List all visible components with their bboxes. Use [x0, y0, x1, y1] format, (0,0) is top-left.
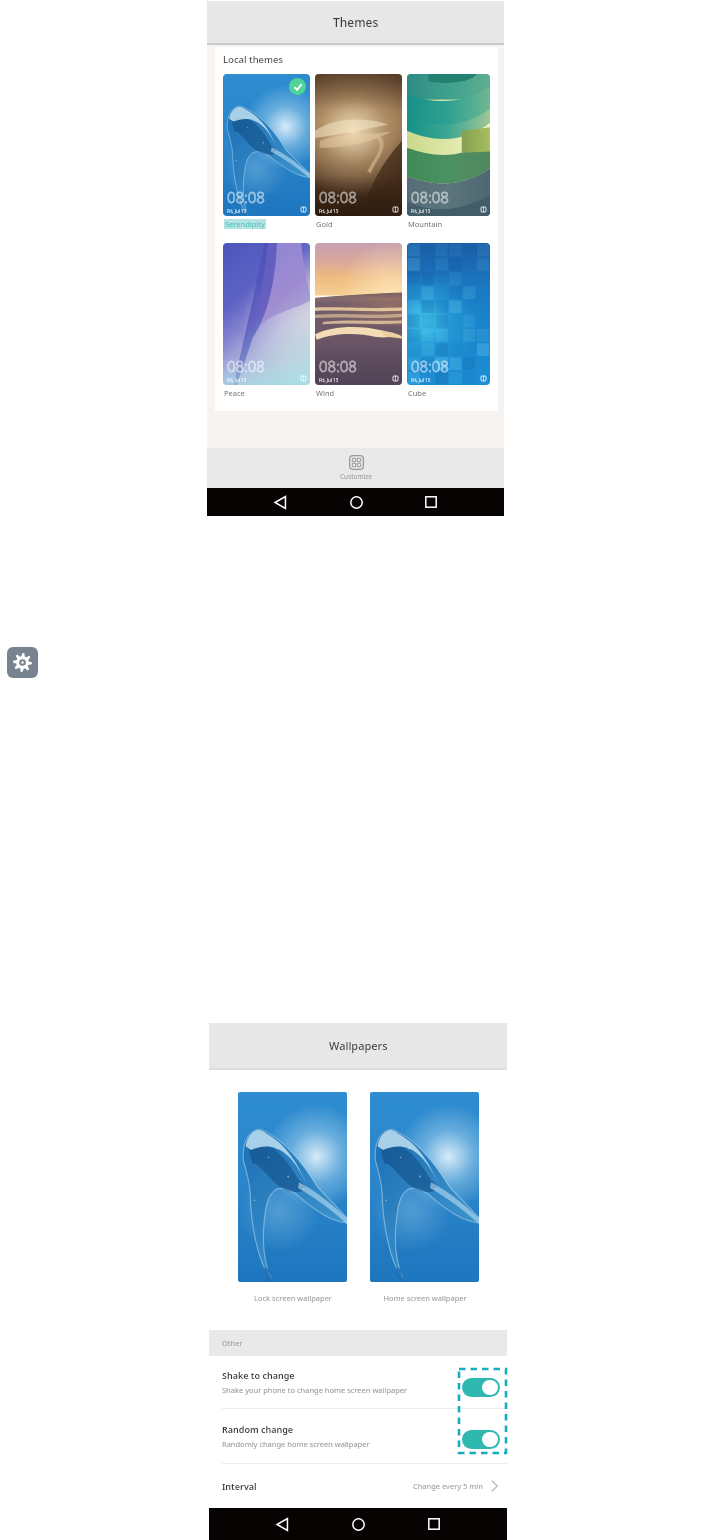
staticText: 08:08 — [227, 356, 265, 376]
button[interactable]: Interval — [209, 1464, 507, 1508]
staticText: Fri, Jul 15 — [227, 208, 247, 214]
staticText: Serendipity — [225, 219, 265, 229]
button[interactable]: 08:08 — [407, 74, 490, 229]
button[interactable]: Random change — [462, 1430, 500, 1449]
button[interactable]: Back — [267, 489, 293, 515]
button[interactable]: Shake to change — [462, 1378, 500, 1397]
staticText: Gold — [316, 219, 333, 229]
staticText: Local themes — [223, 53, 284, 66]
staticText: Themes — [333, 14, 379, 30]
staticText: Fri, Jul 15 — [319, 377, 339, 383]
button[interactable]: Shake to change — [209, 1356, 507, 1408]
button[interactable]: Settings — [7, 647, 38, 678]
staticText: Other — [222, 1338, 243, 1348]
button[interactable]: Recents — [421, 1511, 447, 1537]
button[interactable]: Back — [269, 1511, 295, 1537]
staticText: 08:08 — [227, 187, 265, 207]
button[interactable]: Home screen wallpaper — [370, 1092, 479, 1303]
staticText: 08:08 — [411, 187, 449, 207]
staticText: Mountain — [408, 219, 443, 229]
staticText: Shake to change — [222, 1369, 295, 1381]
button[interactable]: Recents — [418, 489, 444, 515]
staticText: Cube — [408, 388, 427, 398]
button[interactable]: 08:08 — [315, 243, 402, 398]
staticText: Customize — [340, 472, 372, 481]
staticText: 08:08 — [319, 187, 357, 207]
button[interactable]: 08:08 — [407, 243, 490, 398]
staticText: Fri, Jul 15 — [227, 377, 247, 383]
staticText: Randomly change home screen wallpaper — [222, 1439, 370, 1449]
staticText: Wallpapers — [329, 1038, 388, 1053]
staticText: Fri, Jul 15 — [411, 208, 431, 214]
staticText: Shake your phone to change home screen w… — [222, 1385, 408, 1395]
button[interactable]: 08:08 — [223, 74, 310, 229]
staticText: Home screen wallpaper — [383, 1293, 467, 1303]
staticText: Change every 5 min — [413, 1481, 483, 1491]
staticText: 08:08 — [411, 356, 449, 376]
staticText: Fri, Jul 15 — [411, 377, 431, 383]
staticText: Interval — [222, 1480, 257, 1492]
button[interactable]: Home — [343, 489, 369, 515]
button[interactable]: 08:08 — [223, 243, 310, 398]
button[interactable]: Random change — [209, 1409, 507, 1463]
staticText: 08:08 — [319, 356, 357, 376]
staticText: Lock screen wallpaper — [254, 1293, 332, 1303]
staticText: Peace — [224, 388, 245, 398]
staticText: Random change — [222, 1423, 294, 1435]
staticText: Wind — [316, 388, 335, 398]
button[interactable]: Customize — [324, 453, 388, 483]
button[interactable]: Lock screen wallpaper — [238, 1092, 347, 1303]
button[interactable]: Home — [345, 1511, 371, 1537]
button[interactable]: 08:08 — [315, 74, 402, 229]
staticText: Fri, Jul 15 — [319, 208, 339, 214]
